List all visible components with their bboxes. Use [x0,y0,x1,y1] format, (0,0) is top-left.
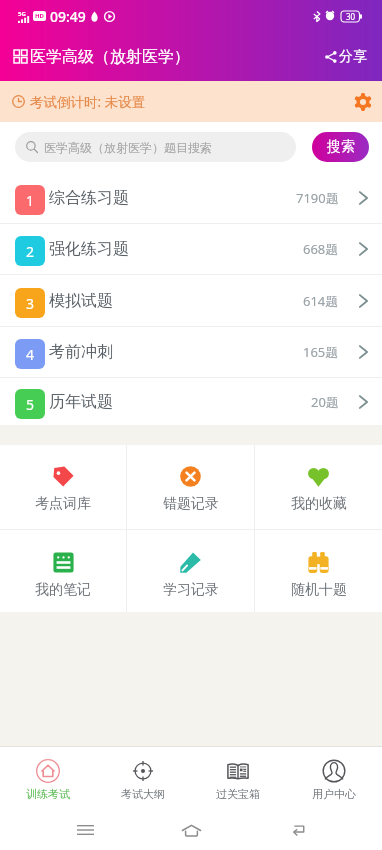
staticText: 09:49 [50,7,86,26]
button[interactable]: 考试大纲 [95,747,190,810]
button[interactable]: 过关宝箱 [190,747,286,810]
staticText: HD [35,12,44,20]
button[interactable]: 设置 [351,90,375,114]
staticText: 随机十题 [291,581,347,599]
staticText: 综合练习题 [49,188,129,208]
staticText: 过关宝箱 [216,787,260,801]
staticText: 7190题 [296,189,339,207]
button[interactable]: 2 [0,224,382,274]
button[interactable]: Back [276,810,320,850]
staticText: 4 [26,345,35,364]
staticText: 训练考试 [26,787,70,801]
button[interactable]: 医学高级（放射医学）题目搜索 [15,132,296,162]
button[interactable]: 搜索 [312,132,369,162]
staticText: 分享 [339,48,367,66]
staticText: 5 [26,395,35,414]
button[interactable]: 4 [0,327,382,377]
button[interactable]: 学习记录 [127,530,254,612]
staticText: 614题 [303,292,339,310]
button[interactable]: 考试倒计时: 未设置 [0,81,382,122]
staticText: 强化练习题 [49,239,129,259]
button[interactable]: 用户中心 [286,747,382,810]
button[interactable]: 错题记录 [127,445,254,529]
staticText: 考点词库 [35,495,91,513]
button[interactable]: 我的笔记 [0,530,126,612]
button[interactable]: Recents [63,810,107,850]
staticText: 我的收藏 [291,495,347,513]
button[interactable]: 我的收藏 [255,445,382,529]
staticText: 3 [26,294,35,313]
staticText: 医学高级（放射医学） [30,47,190,67]
staticText: 考前冲刺 [49,342,113,362]
staticText: 用户中心 [312,787,356,801]
button[interactable]: Home [169,810,213,850]
staticText: 模拟试题 [49,291,113,311]
staticText: 搜索 [327,138,355,156]
button[interactable]: 5 [0,378,382,425]
staticText: 1 [26,191,35,210]
staticText: 20题 [311,393,339,411]
staticText: 考试大纲 [121,787,165,801]
staticText: 165题 [303,343,339,361]
button[interactable]: 考点词库 [0,445,126,529]
staticText: 2 [26,242,35,261]
button[interactable]: 3 [0,275,382,326]
staticText: 30 [346,11,356,22]
staticText: 历年试题 [49,392,113,412]
staticText: 考试倒计时: 未设置 [30,93,146,111]
staticText: 5G [18,10,26,18]
button[interactable]: 训练考试 [0,747,95,810]
button[interactable]: 1 [0,172,382,223]
button[interactable]: 随机十题 [255,530,382,612]
staticText: 668题 [303,240,339,258]
staticText: 错题记录 [163,495,219,513]
staticText: 医学高级（放射医学）题目搜索 [44,140,212,155]
staticText: 我的笔记 [35,581,91,599]
staticText: 学习记录 [163,581,219,599]
button[interactable]: 分享 [323,42,369,72]
